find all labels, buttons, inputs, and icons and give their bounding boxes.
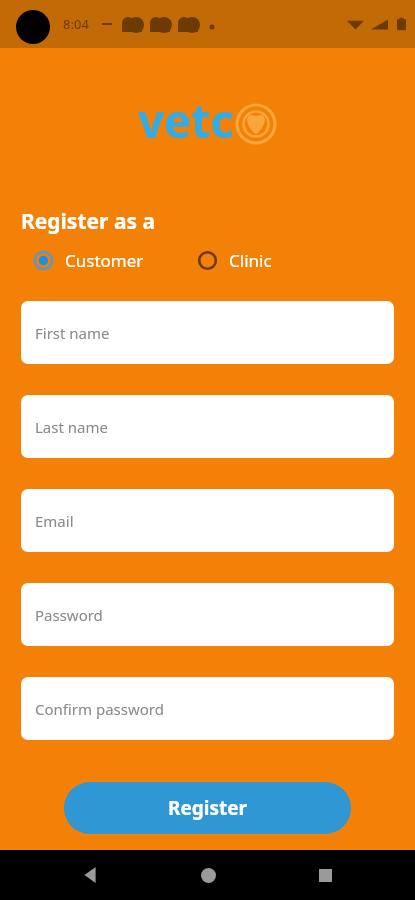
staticText: Last name bbox=[35, 417, 108, 437]
button[interactable]: Recent apps bbox=[297, 850, 353, 900]
button[interactable]: Password bbox=[21, 583, 394, 646]
button[interactable]: Last name bbox=[21, 395, 394, 458]
button[interactable]: Back bbox=[62, 850, 118, 900]
staticText: Password bbox=[35, 605, 103, 625]
button[interactable]: Customer bbox=[34, 249, 144, 272]
button[interactable]: Confirm password bbox=[21, 677, 394, 740]
staticText: First name bbox=[35, 323, 110, 343]
button[interactable]: Clinic bbox=[198, 249, 272, 272]
staticText: Clinic bbox=[229, 249, 272, 272]
staticText: Register bbox=[168, 795, 248, 821]
button[interactable]: Email bbox=[21, 489, 394, 552]
button[interactable]: Home bbox=[180, 850, 236, 900]
staticText: vetc bbox=[138, 89, 234, 152]
staticText: Register as a bbox=[21, 207, 156, 236]
staticText: 8:04 bbox=[63, 15, 89, 33]
button[interactable]: First name bbox=[21, 301, 394, 364]
staticText: Confirm password bbox=[35, 699, 164, 719]
staticText: Email bbox=[35, 511, 74, 531]
staticText: Customer bbox=[65, 249, 144, 272]
button[interactable]: Register bbox=[64, 782, 351, 834]
